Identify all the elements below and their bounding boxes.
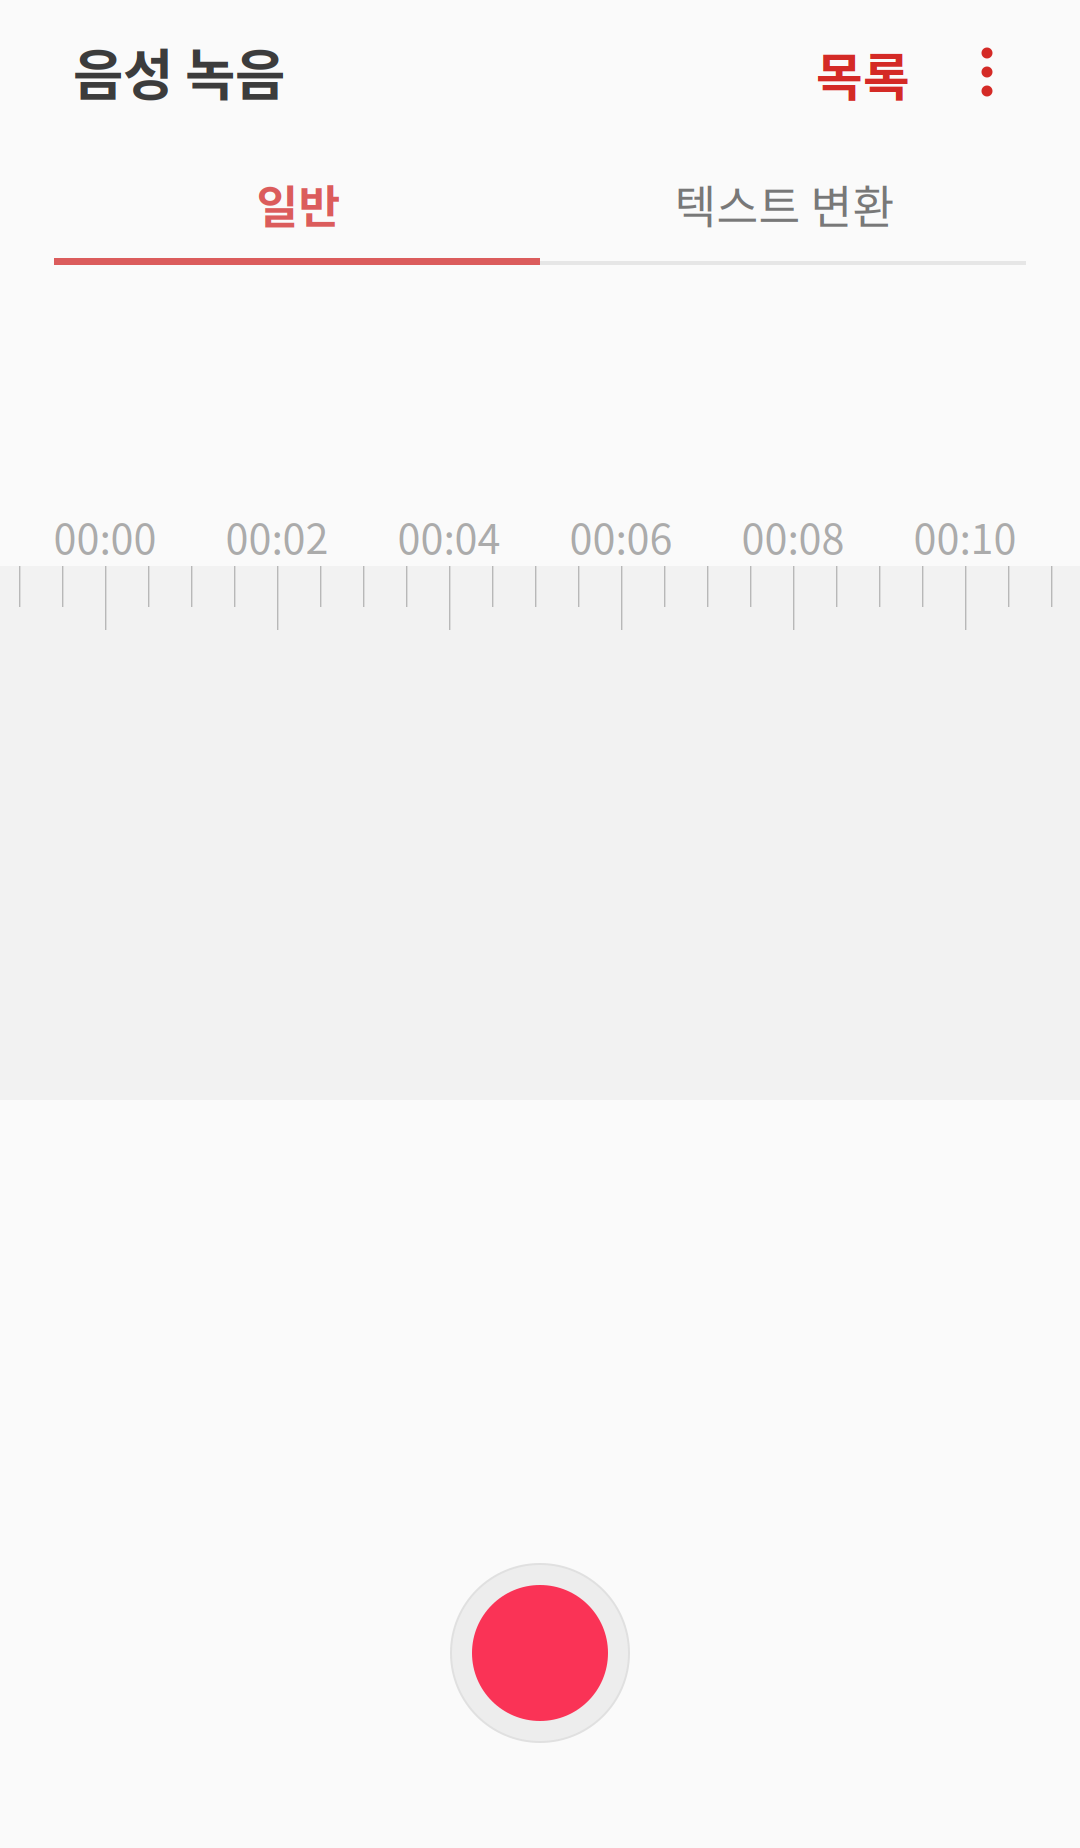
button[interactable]: 목록 [788, 14, 938, 134]
staticText: 00:08 [741, 506, 844, 566]
staticText: 00:06 [569, 506, 672, 566]
staticText: 목록 [816, 37, 910, 111]
staticText: 텍스트 변환 [674, 171, 894, 237]
staticText: 00:00 [53, 506, 156, 566]
staticText: 일반 [256, 171, 340, 237]
button[interactable]: 텍스트 변환 [541, 150, 1027, 258]
staticText: 음성 녹음 [73, 31, 285, 111]
staticText: 00:04 [397, 506, 500, 566]
button[interactable]: Record [451, 1564, 629, 1742]
staticText: 00:10 [913, 506, 1016, 566]
button[interactable]: More options [961, 36, 1013, 106]
button[interactable]: 일반 [55, 150, 541, 258]
staticText: 00:02 [225, 506, 328, 566]
